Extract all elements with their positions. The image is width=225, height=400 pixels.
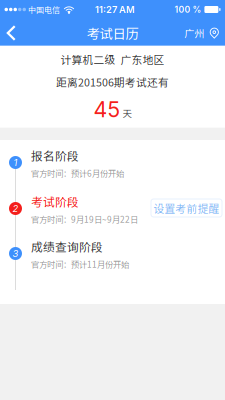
staticText: 广东地区: [120, 52, 164, 67]
staticText: 中国电信: [28, 4, 60, 15]
staticText: 报名阶段: [31, 147, 79, 164]
staticText: 官方时间：预计11月份开始: [31, 258, 129, 270]
staticText: 官方时间：预计6月份开始: [31, 167, 124, 179]
staticText: 2: [12, 203, 18, 214]
button[interactable]: 设置考前提醒: [151, 199, 222, 217]
staticText: 设置考前提醒: [153, 200, 219, 216]
staticText: 天: [122, 106, 131, 120]
button[interactable]: Back: [0, 19, 30, 47]
staticText: 3: [12, 248, 18, 259]
staticText: 距离201506期考试还有: [56, 74, 169, 89]
staticText: 成绩查询阶段: [31, 238, 103, 255]
staticText: 广州: [185, 26, 205, 40]
staticText: 1: [13, 157, 17, 168]
button[interactable]: Change city, Guangzhou: [177, 19, 225, 47]
staticText: 11:27 AM: [95, 4, 135, 15]
staticText: 45: [93, 96, 120, 122]
staticText: 考试阶段: [31, 193, 79, 210]
staticText: 计算机二级: [60, 52, 115, 67]
staticText: 考试日历: [86, 23, 138, 43]
staticText: 官方时间：9月19日~9月22日: [31, 213, 138, 225]
staticText: 100 %: [174, 4, 201, 15]
